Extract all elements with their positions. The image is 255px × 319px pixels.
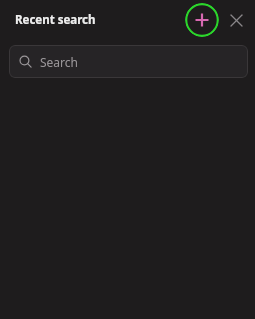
button[interactable]: Search xyxy=(9,45,248,78)
staticText: Recent search xyxy=(15,12,96,28)
button[interactable]: Add xyxy=(185,3,219,37)
staticText: Search xyxy=(40,54,78,70)
button[interactable]: Close xyxy=(225,9,247,31)
